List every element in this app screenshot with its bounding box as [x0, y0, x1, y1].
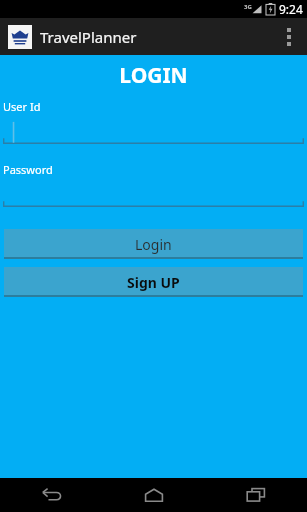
- button[interactable]: [3, 181, 304, 207]
- staticText: TravelPlanner: [40, 27, 137, 47]
- staticText: Login: [135, 235, 172, 254]
- staticText: 9:24: [279, 1, 303, 17]
- staticText: Sign UP: [127, 273, 180, 292]
- staticText: Password: [3, 162, 53, 177]
- button[interactable]: [3, 118, 304, 144]
- button[interactable]: More options: [270, 18, 307, 55]
- staticText: User Id: [3, 99, 41, 114]
- button[interactable]: Home: [103, 478, 205, 512]
- button[interactable]: Sign UP: [4, 267, 303, 297]
- button[interactable]: Recent apps: [205, 478, 307, 512]
- button[interactable]: Login: [4, 229, 303, 259]
- staticText: 3G: [244, 3, 252, 11]
- button[interactable]: Back: [0, 478, 103, 512]
- staticText: LOGIN: [0, 61, 307, 90]
